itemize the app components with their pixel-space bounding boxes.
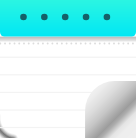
button[interactable]: Notepad [0, 0, 136, 138]
